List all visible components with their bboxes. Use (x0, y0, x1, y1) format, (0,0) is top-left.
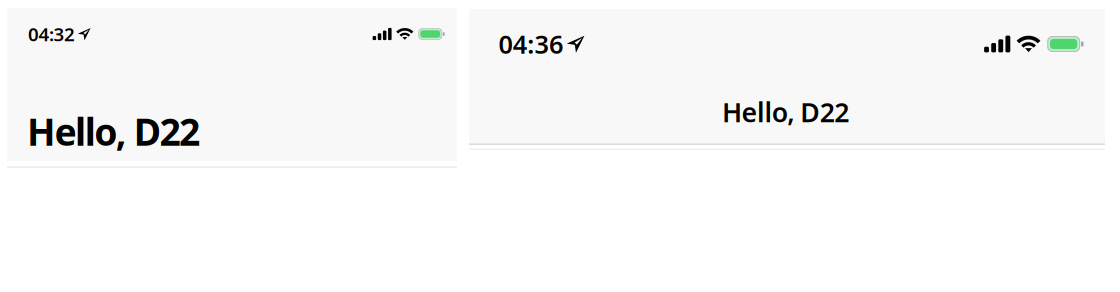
staticText: Hello, D22 (722, 94, 849, 130)
staticText: 04:32 (28, 22, 75, 46)
staticText: 04:36 (498, 27, 563, 61)
staticText: Hello, D22 (27, 106, 200, 156)
